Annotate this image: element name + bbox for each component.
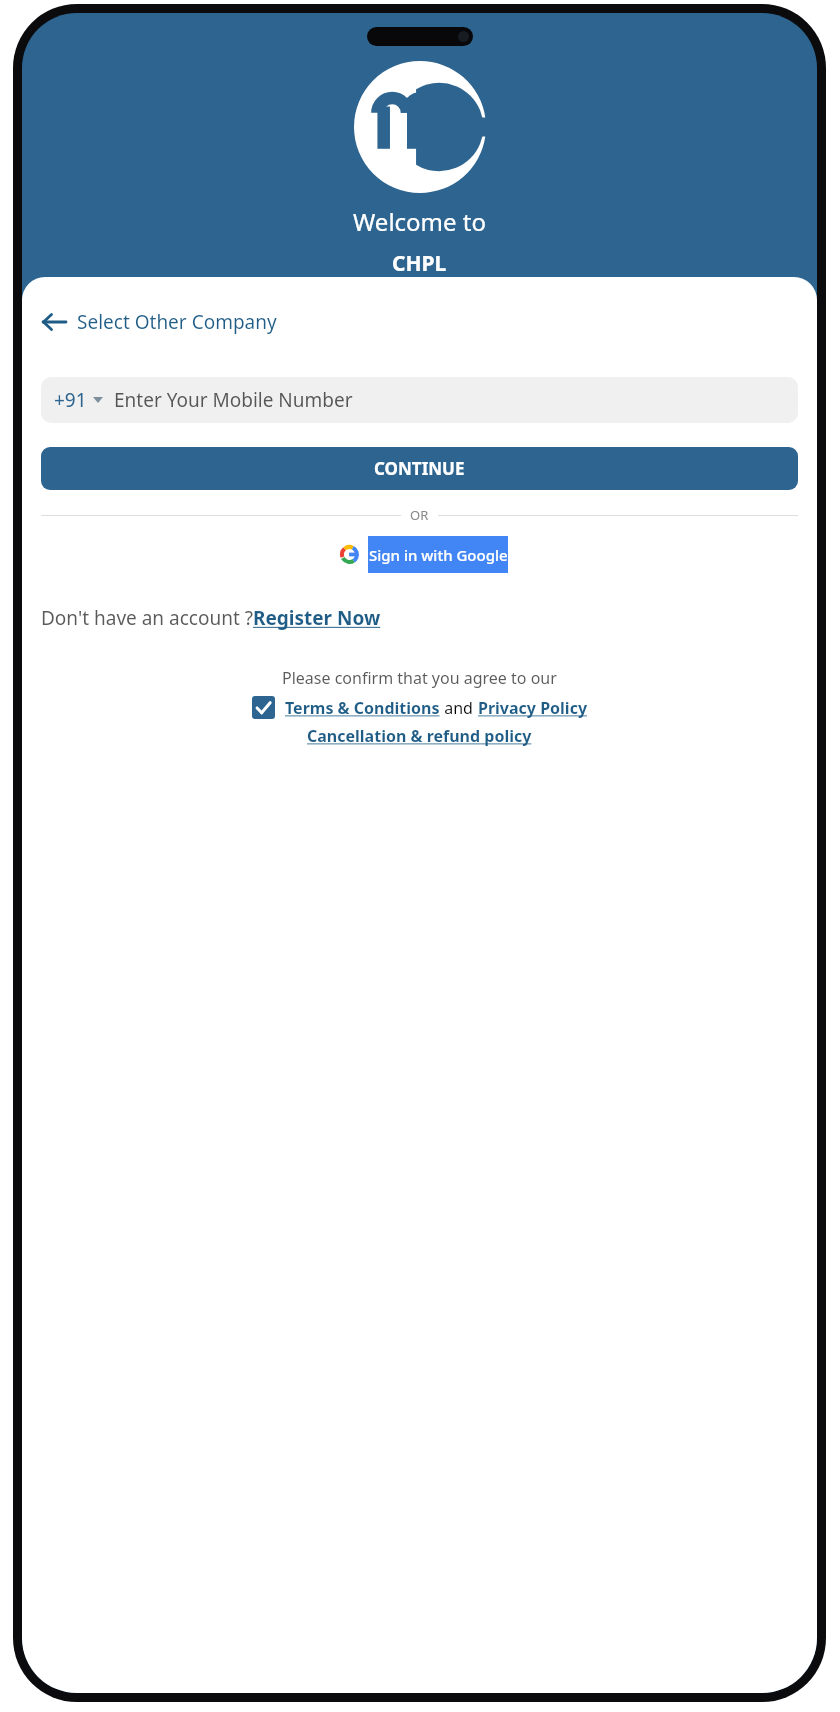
- button[interactable]: Select Other Company: [41, 303, 277, 341]
- button[interactable]: Cancellation & refund policy: [307, 725, 532, 747]
- staticText: Enter Your Mobile Number: [114, 387, 353, 413]
- button[interactable]: CONTINUE: [41, 447, 798, 490]
- button[interactable]: +91: [41, 377, 798, 423]
- staticText: +91: [54, 387, 87, 413]
- staticText: Don't have an account ?Register Now: [41, 605, 381, 631]
- staticText: and: [440, 697, 478, 719]
- button[interactable]: Sign in with Google: [331, 536, 508, 573]
- staticText: Sign in with Google: [369, 545, 508, 565]
- staticText: CONTINUE: [374, 457, 465, 480]
- staticText: CHPL: [392, 249, 447, 278]
- button[interactable]: Terms & Conditions: [285, 697, 440, 719]
- button[interactable]: Don't have an account ?Register Now: [41, 605, 798, 631]
- staticText: OR: [410, 506, 429, 524]
- staticText: Select Other Company: [77, 309, 277, 335]
- button[interactable]: Privacy Policy: [478, 697, 588, 719]
- button[interactable]: Agree to terms: [252, 696, 275, 719]
- staticText: Welcome to: [353, 205, 487, 238]
- staticText: Please confirm that you agree to our: [282, 667, 557, 689]
